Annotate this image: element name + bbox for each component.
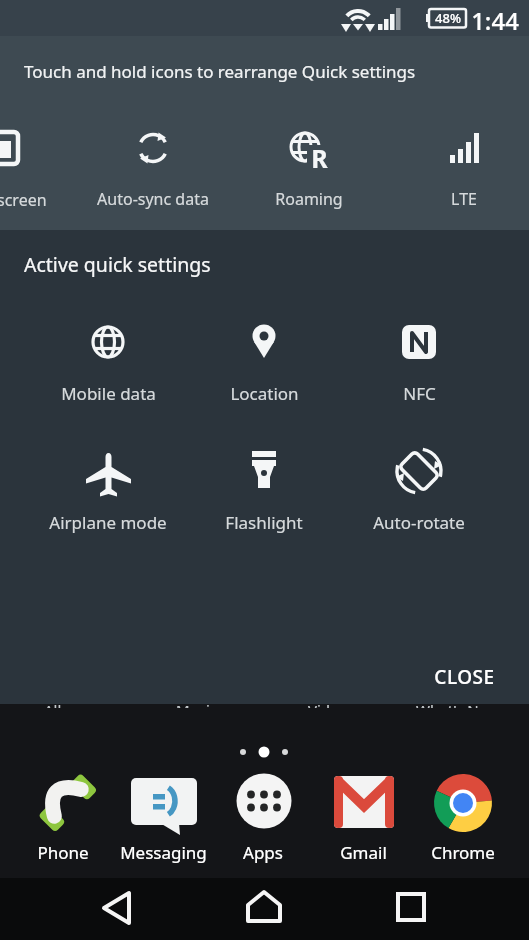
button[interactable]	[369, 315, 469, 415]
staticText: Messaging	[120, 841, 207, 864]
button[interactable]	[388, 886, 432, 930]
staticText: 1:44	[471, 4, 519, 32]
staticText: Auto-sync data	[97, 188, 209, 210]
button[interactable]	[214, 444, 314, 544]
button[interactable]	[414, 655, 514, 699]
staticText: Roaming	[275, 188, 343, 210]
staticText: Phone	[37, 841, 89, 864]
staticText: 48%	[435, 9, 461, 27]
button[interactable]	[414, 120, 514, 220]
button[interactable]	[223, 764, 303, 868]
staticText: Music	[176, 703, 218, 708]
staticText: What's New	[416, 703, 499, 708]
staticText: CLOSE	[434, 664, 495, 690]
button[interactable]	[214, 315, 314, 415]
button[interactable]	[242, 886, 286, 930]
staticText: Mobile data	[61, 382, 156, 405]
staticText: Touch and hold icons to rearrange Quick …	[24, 60, 416, 83]
button[interactable]	[58, 444, 159, 544]
button[interactable]	[259, 120, 359, 220]
staticText: Gmail	[340, 841, 387, 864]
button[interactable]	[58, 315, 159, 415]
button[interactable]	[369, 444, 469, 544]
staticText: Album	[44, 703, 90, 708]
staticText: Auto-rotate	[373, 511, 465, 534]
staticText: Chrome	[431, 841, 495, 864]
staticText: LTE	[451, 188, 477, 210]
staticText: Apps	[243, 841, 283, 864]
button[interactable]	[23, 764, 103, 868]
staticText: Flashlight	[225, 511, 303, 534]
staticText: Active quick settings	[24, 251, 211, 278]
staticText: Video	[308, 703, 348, 708]
button[interactable]	[96, 886, 140, 930]
staticText: screen	[0, 189, 47, 211]
button[interactable]	[423, 764, 503, 868]
staticText: R	[311, 141, 328, 169]
staticText: Airplane mode	[49, 511, 167, 534]
staticText: Location	[230, 382, 299, 405]
staticText: NFC	[403, 382, 436, 405]
button[interactable]	[123, 764, 203, 868]
button[interactable]	[103, 120, 203, 220]
button[interactable]	[323, 764, 403, 868]
